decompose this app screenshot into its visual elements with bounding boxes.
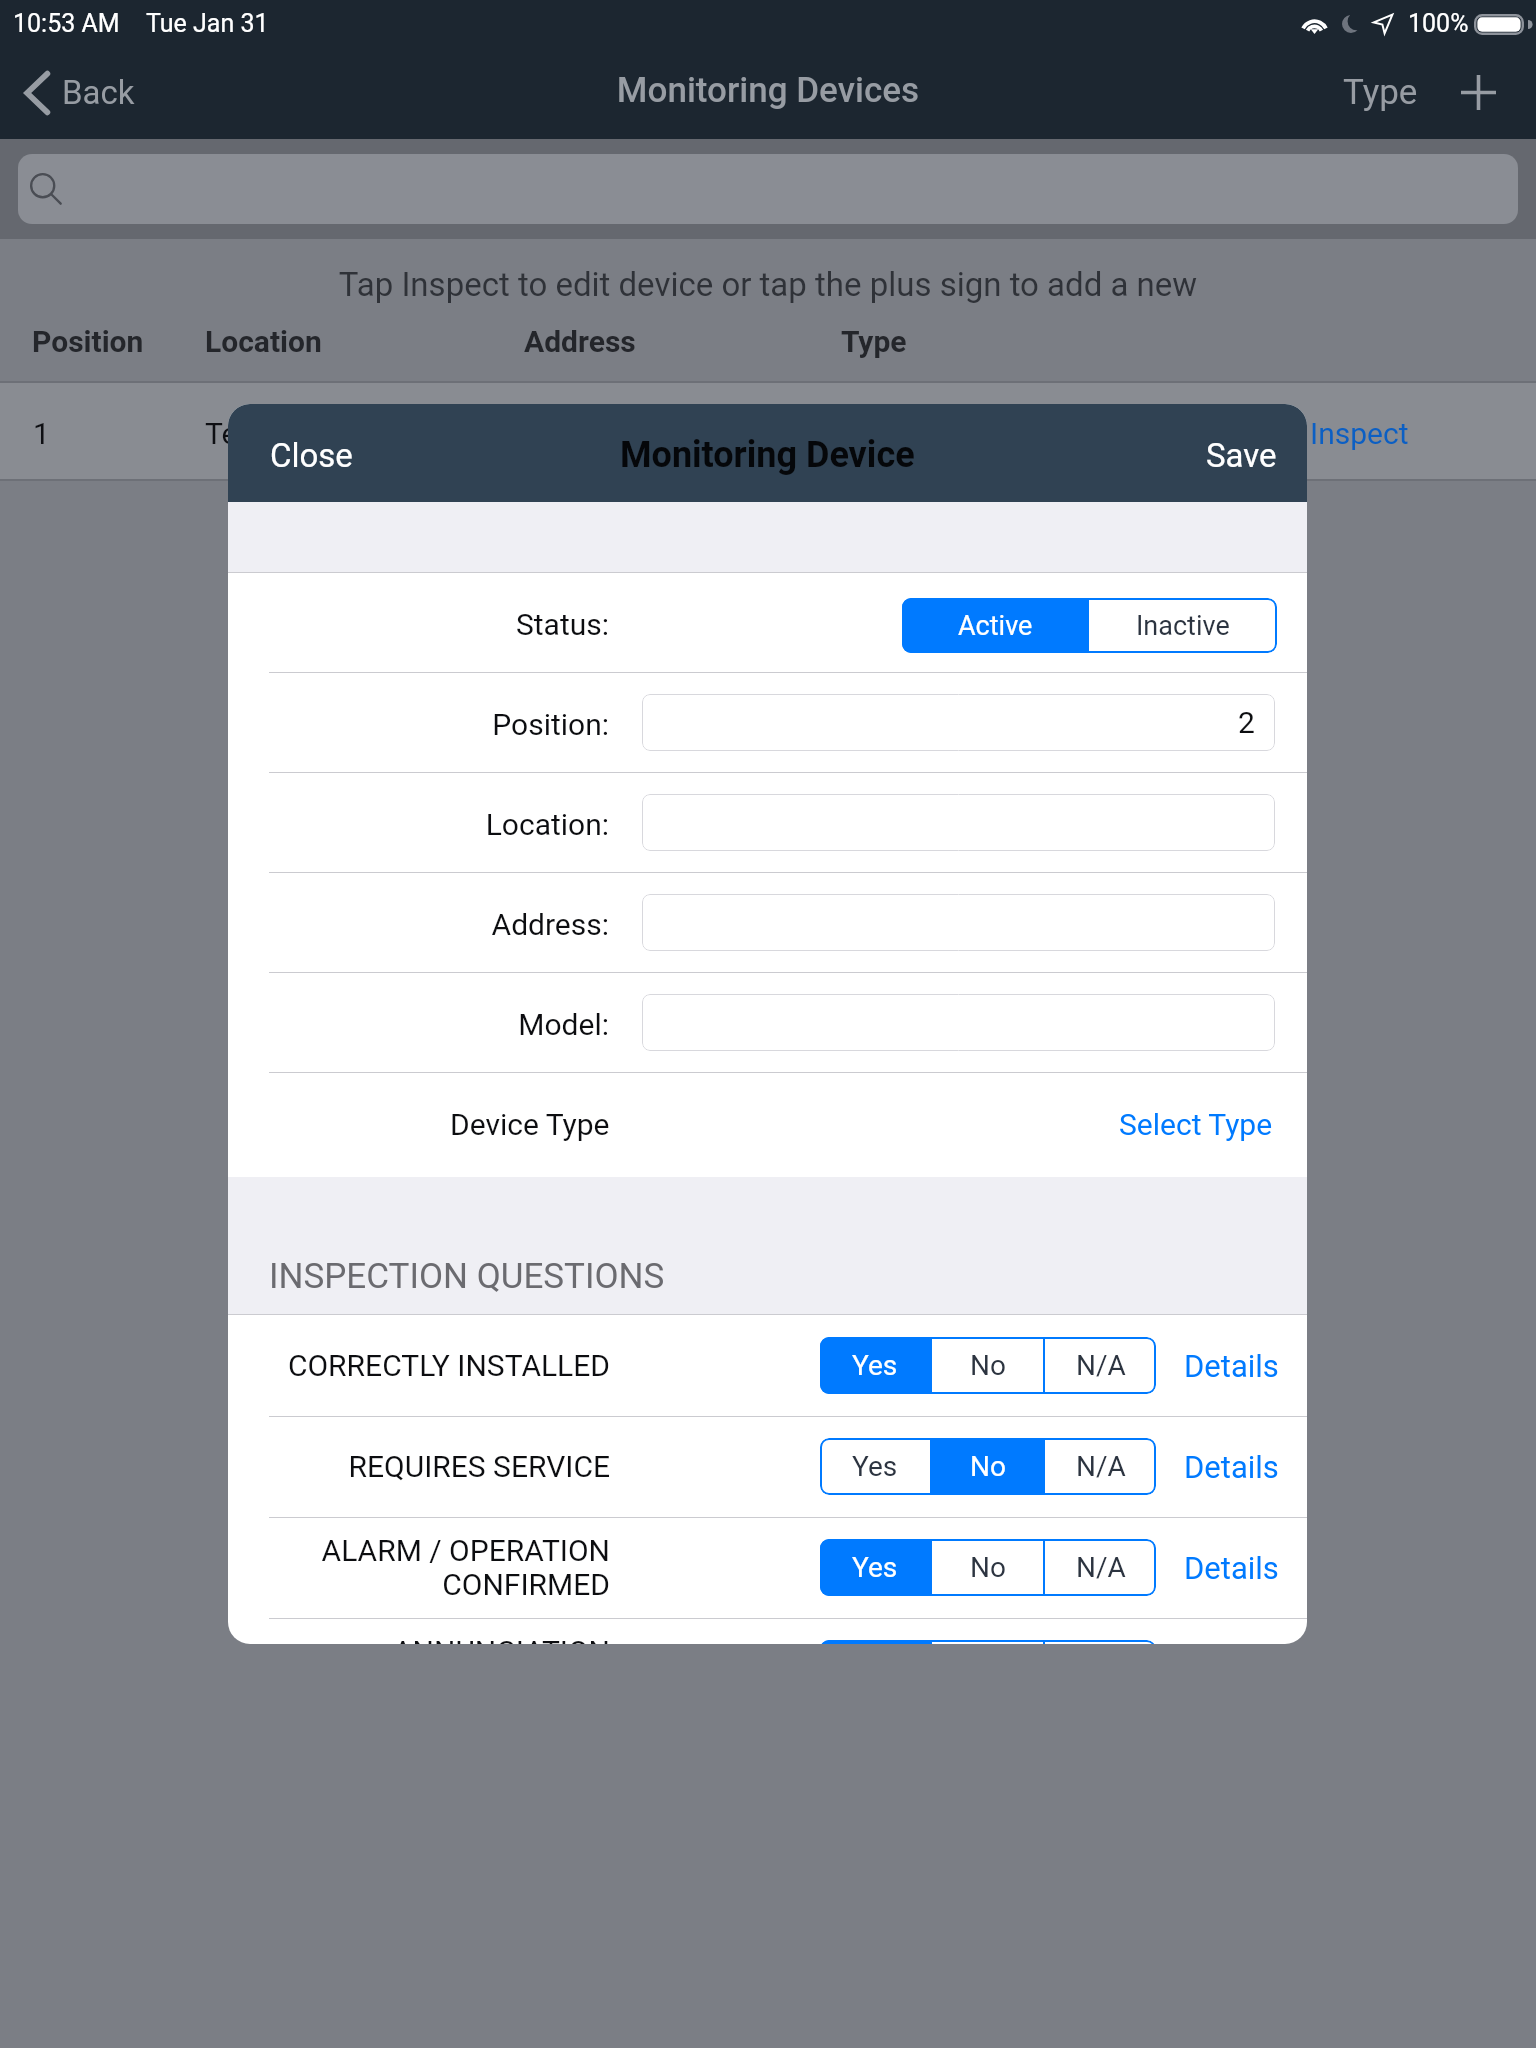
staticText: Tap Inspect to edit device or tap the pl… — [0, 265, 1536, 304]
staticText: Select Type — [1119, 1107, 1273, 1142]
staticText: Active — [958, 610, 1033, 642]
staticText: Type — [841, 324, 907, 359]
button[interactable]: N/A — [1045, 1640, 1156, 1644]
staticText: Monitoring Devices — [0, 70, 1536, 111]
staticText: ALARM / OPERATION CONFIRMED — [228, 1533, 610, 1602]
button[interactable]: N/A — [1045, 1438, 1156, 1495]
staticText: N/A — [1076, 1349, 1126, 1382]
button[interactable]: Type — [1330, 46, 1430, 139]
button[interactable]: Yes — [820, 1640, 930, 1644]
button[interactable]: Add — [1440, 46, 1516, 139]
button[interactable]: No — [932, 1337, 1043, 1394]
button[interactable]: No — [932, 1539, 1043, 1596]
button[interactable]: 1 — [0, 383, 1536, 479]
button[interactable]: Position: — [642, 694, 1275, 751]
staticText: Details — [1184, 1449, 1279, 1485]
staticText: Device Type — [450, 1107, 610, 1142]
staticText: No — [970, 1349, 1006, 1382]
button[interactable]: Location: — [642, 794, 1275, 851]
staticText: 2 — [1238, 705, 1255, 740]
button[interactable]: Yes — [820, 1337, 930, 1394]
staticText: Address: — [228, 907, 609, 942]
staticText: Location — [205, 324, 322, 359]
staticText: Yes — [852, 1551, 898, 1584]
staticText: Model: — [228, 1007, 609, 1042]
staticText: CORRECTLY INSTALLED — [228, 1348, 610, 1383]
button[interactable]: Active — [902, 598, 1089, 653]
staticText: Details — [1184, 1550, 1279, 1586]
button[interactable]: Details — [1170, 1328, 1293, 1404]
staticText: Status: — [228, 607, 609, 642]
button[interactable]: No — [932, 1438, 1043, 1495]
button[interactable]: Search — [18, 154, 1518, 224]
staticText: No — [970, 1450, 1006, 1483]
staticText: 10:53 AM — [13, 9, 120, 38]
button[interactable]: Close — [256, 414, 367, 497]
button[interactable]: Details — [1170, 1530, 1293, 1606]
staticText: Details — [1184, 1348, 1279, 1384]
button[interactable]: N/A — [1045, 1337, 1156, 1394]
staticText: Inactive — [1136, 610, 1230, 642]
button[interactable]: Model: — [642, 994, 1275, 1051]
staticText: N/A — [1076, 1551, 1126, 1584]
button[interactable]: Save — [1192, 414, 1291, 497]
staticText: Tue Jan 31 — [146, 9, 269, 38]
staticText: Test — [205, 416, 263, 451]
button[interactable]: Yes — [820, 1438, 930, 1495]
staticText: Type — [1343, 72, 1418, 113]
staticText: ANNUNCIATION CONFIRMED — [228, 1634, 610, 1644]
staticText: No — [970, 1551, 1006, 1584]
button[interactable]: No — [932, 1640, 1043, 1644]
button[interactable]: Inactive — [1089, 598, 1277, 653]
staticText: 100% — [1408, 9, 1469, 38]
staticText: Inspect — [1310, 416, 1409, 451]
button[interactable]: Select Type — [1105, 1087, 1287, 1162]
staticText: INSPECTION QUESTIONS — [269, 1256, 665, 1297]
staticText: Close — [270, 436, 353, 475]
staticText: Save — [1206, 436, 1277, 475]
staticText: Yes — [852, 1349, 898, 1382]
staticText: Monitoring Device — [620, 434, 915, 476]
staticText: Position: — [228, 707, 609, 742]
staticText: N/A — [1076, 1450, 1126, 1483]
staticText: Address — [524, 324, 636, 359]
button[interactable]: N/A — [1045, 1539, 1156, 1596]
staticText: Position — [32, 324, 144, 359]
staticText: Location: — [228, 807, 609, 842]
staticText: Back — [62, 73, 135, 112]
button[interactable]: Back — [18, 46, 141, 139]
button[interactable]: Details — [1170, 1631, 1293, 1644]
staticText: Yes — [852, 1450, 898, 1483]
staticText: REQUIRES SERVICE — [228, 1449, 610, 1484]
staticText: 1 — [33, 416, 50, 451]
button[interactable]: Details — [1170, 1429, 1293, 1505]
button[interactable]: Yes — [820, 1539, 930, 1596]
button[interactable]: Address: — [642, 894, 1275, 951]
